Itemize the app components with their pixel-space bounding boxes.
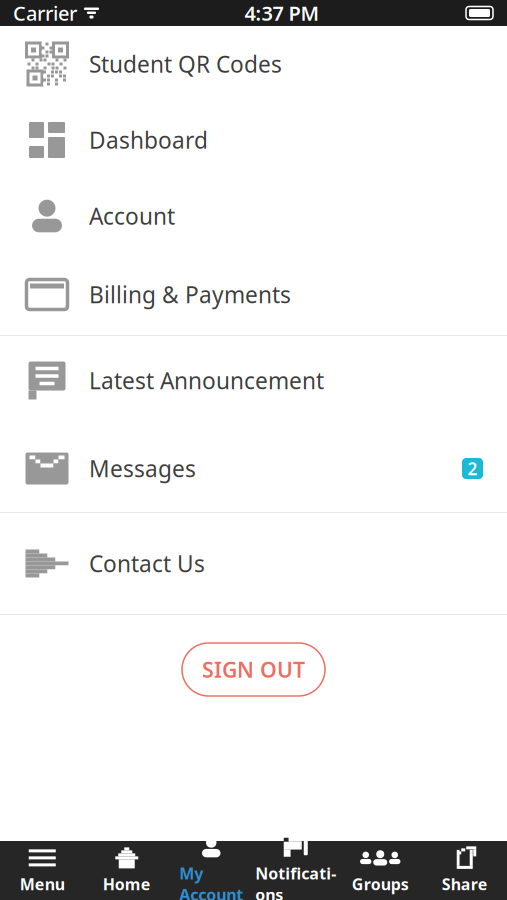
staticText: 2 [467, 457, 477, 480]
staticText: My Account [179, 863, 243, 900]
staticText: Contact Us [89, 548, 205, 578]
staticText: 4:37 PM [244, 0, 319, 26]
button[interactable]: Billing & Payments [0, 254, 507, 335]
button[interactable]: Notifications [253, 836, 338, 900]
staticText: Share [442, 873, 488, 895]
button[interactable]: Home [84, 841, 169, 899]
staticText: Dashboard [89, 125, 208, 155]
staticText: Home [103, 873, 151, 895]
button[interactable]: Dashboard [0, 102, 507, 178]
staticText: SIGN OUT [202, 655, 305, 684]
staticText: Student QR Codes [89, 49, 282, 79]
button[interactable]: SIGN OUT [182, 643, 325, 696]
button[interactable]: My Account [169, 836, 253, 900]
staticText: Account [89, 201, 175, 231]
button[interactable]: Share [422, 841, 507, 899]
button[interactable]: Student QR Codes [0, 26, 507, 102]
staticText: Groups [352, 873, 409, 895]
staticText: Menu [20, 873, 65, 895]
button[interactable]: Messages [0, 425, 507, 512]
staticText: Notifications [255, 863, 336, 900]
staticText: Billing & Payments [89, 279, 291, 309]
button[interactable]: Menu [0, 841, 84, 899]
staticText: Messages [89, 453, 196, 483]
button[interactable]: Latest Announcement [0, 336, 507, 425]
button[interactable]: Groups [338, 841, 422, 899]
button[interactable]: Contact Us [0, 513, 507, 614]
button[interactable]: Account [0, 178, 507, 254]
staticText: Latest Announcement [89, 365, 324, 395]
staticText: Carrier [13, 0, 77, 26]
